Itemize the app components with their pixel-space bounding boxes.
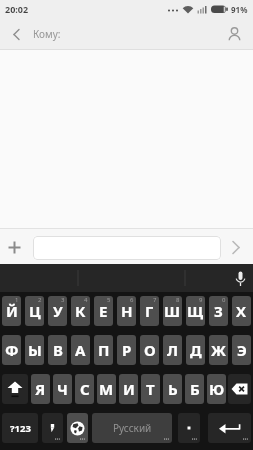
button[interactable]: Русский [92, 413, 172, 443]
button[interactable]: З [209, 296, 228, 326]
button[interactable] [230, 269, 250, 289]
button[interactable] [42, 413, 63, 443]
button[interactable]: Е [94, 296, 113, 326]
staticText: П [98, 340, 110, 360]
staticText: Б [190, 379, 200, 399]
staticText: Д [190, 340, 202, 360]
staticText: 9 [199, 296, 203, 304]
button[interactable]: Т [141, 374, 160, 404]
button[interactable] [9, 27, 23, 41]
button[interactable]: Й [2, 296, 21, 326]
button[interactable]: Ь [163, 374, 182, 404]
button[interactable]: Б [185, 374, 204, 404]
staticText: У [53, 301, 63, 321]
staticText: Х [236, 301, 247, 321]
staticText: 20:02 [5, 3, 29, 15]
staticText: 8 [176, 296, 180, 304]
button[interactable]: О [140, 335, 159, 365]
staticText: О [144, 340, 156, 360]
staticText: ?123 [10, 422, 31, 435]
staticText: Ш [164, 301, 181, 321]
button[interactable] [228, 374, 251, 404]
button[interactable]: Я [31, 374, 50, 404]
staticText: С [80, 379, 90, 399]
staticText: И [123, 379, 135, 399]
staticText: Кому: [33, 27, 61, 41]
button[interactable]: Р [117, 335, 136, 365]
staticText: Р [122, 340, 132, 360]
staticText: Ь [168, 379, 178, 399]
staticText: Е [99, 301, 108, 321]
button[interactable]: Д [186, 335, 205, 365]
button[interactable]: К [71, 296, 90, 326]
button[interactable]: Ч [53, 374, 72, 404]
staticText: 91% [231, 4, 248, 15]
staticText: 5 [107, 296, 111, 304]
button[interactable]: Х [232, 296, 251, 326]
staticText: Н [121, 301, 133, 321]
button[interactable]: Л [163, 335, 182, 365]
staticText: К [75, 301, 86, 321]
staticText: А [75, 340, 86, 360]
button[interactable]: Н [117, 296, 136, 326]
button[interactable]: ?123 [2, 413, 38, 443]
button[interactable]: Ф [2, 335, 21, 365]
staticText: Т [146, 379, 155, 399]
button[interactable] [67, 413, 88, 443]
staticText: Щ [187, 301, 204, 321]
staticText: 3 [61, 296, 65, 304]
staticText: 7 [153, 296, 157, 304]
staticText: 2 [38, 296, 42, 304]
staticText: Ы [28, 340, 42, 360]
staticText: 0 [222, 296, 226, 304]
button[interactable]: С [75, 374, 94, 404]
staticText: З [214, 301, 223, 321]
button[interactable]: А [71, 335, 90, 365]
button[interactable] [178, 413, 200, 443]
staticText: М [99, 379, 114, 399]
staticText: Э [237, 340, 247, 360]
button[interactable] [2, 374, 28, 404]
staticText: Ц [29, 301, 41, 321]
button[interactable]: И [119, 374, 138, 404]
staticText: Ф [5, 340, 19, 360]
button[interactable] [223, 23, 245, 45]
button[interactable]: М [97, 374, 116, 404]
button[interactable]: В [48, 335, 67, 365]
button[interactable] [227, 239, 244, 256]
button[interactable] [208, 413, 251, 443]
button[interactable]: Ш [163, 296, 182, 326]
button[interactable]: Щ [186, 296, 205, 326]
button[interactable]: Ю [207, 374, 226, 404]
staticText: 4 [84, 296, 88, 304]
staticText: Ж [211, 340, 226, 360]
button[interactable]: У [48, 296, 67, 326]
staticText: Л [167, 340, 178, 360]
staticText: Русский [113, 421, 152, 435]
staticText: Ю [209, 379, 225, 399]
button[interactable] [6, 239, 23, 256]
button[interactable]: Ы [25, 335, 44, 365]
button[interactable]: Ж [209, 335, 228, 365]
staticText: Й [6, 301, 18, 321]
button[interactable] [33, 236, 221, 260]
staticText: Ч [57, 379, 68, 399]
button[interactable]: Г [140, 296, 159, 326]
staticText: 6 [130, 296, 134, 304]
staticText: Г [145, 301, 154, 321]
button[interactable]: Ц [25, 296, 44, 326]
staticText: 1 [15, 296, 19, 304]
staticText: Я [35, 379, 46, 399]
button[interactable]: Э [232, 335, 251, 365]
button[interactable]: П [94, 335, 113, 365]
staticText: В [53, 340, 63, 360]
